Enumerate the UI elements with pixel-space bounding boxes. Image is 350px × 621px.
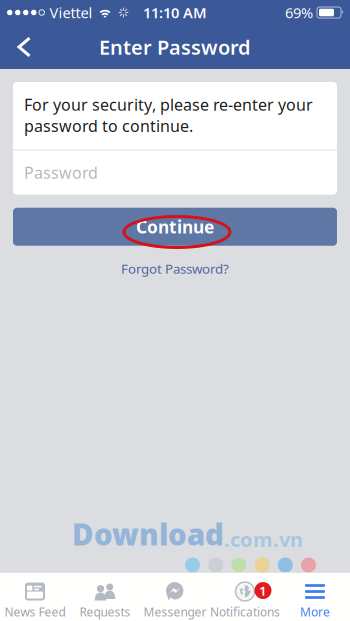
staticText: Requests (79, 604, 130, 620)
button[interactable]: More (280, 573, 350, 621)
staticText: 69% (285, 3, 313, 22)
staticText: More (300, 604, 330, 620)
button[interactable]: 1 (210, 573, 280, 621)
button[interactable]: Back (0, 26, 45, 67)
staticText: Messenger (143, 604, 206, 620)
button[interactable]: News Feed (0, 573, 70, 621)
button[interactable]: Forgot Password? (109, 256, 241, 281)
staticText: 11:10 AM (143, 3, 207, 22)
staticText: Viettel (49, 3, 92, 22)
staticText: 1 (259, 582, 267, 599)
staticText: For your security, please re-enter your … (24, 94, 313, 136)
button[interactable]: Continue (13, 208, 337, 246)
staticText: Download (72, 514, 224, 553)
staticText: .com.vn (224, 526, 303, 552)
staticText: News Feed (4, 604, 65, 620)
staticText: Notifications (210, 604, 280, 620)
staticText: Enter Password (99, 34, 251, 60)
button[interactable]: Messenger (140, 573, 210, 621)
staticText: Forgot Password? (121, 260, 229, 277)
staticText: Password (24, 162, 98, 183)
button[interactable]: Requests (70, 573, 140, 621)
staticText: Continue (136, 215, 214, 238)
